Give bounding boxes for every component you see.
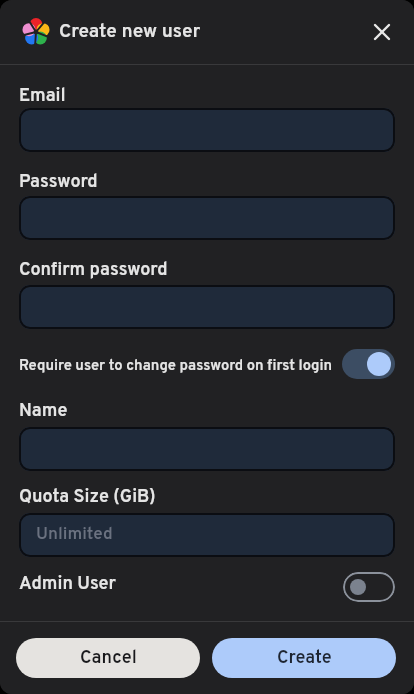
button[interactable] bbox=[19, 285, 395, 329]
button[interactable] bbox=[19, 108, 395, 152]
staticText: Require user to change password on first… bbox=[19, 357, 333, 376]
staticText: Quota Size (GiB) bbox=[19, 486, 156, 509]
button[interactable] bbox=[342, 349, 395, 379]
button[interactable] bbox=[343, 572, 395, 602]
staticText: Email bbox=[19, 85, 66, 108]
staticText: Create bbox=[277, 647, 332, 670]
button[interactable] bbox=[366, 16, 398, 48]
button[interactable]: Cancel bbox=[16, 638, 200, 678]
staticText: Unlimited bbox=[36, 524, 113, 546]
staticText: Confirm password bbox=[19, 259, 168, 282]
staticText: Create new user bbox=[59, 20, 201, 44]
staticText: Password bbox=[19, 171, 98, 194]
button[interactable] bbox=[19, 427, 395, 471]
staticText: Cancel bbox=[80, 647, 137, 670]
button[interactable]: Unlimited bbox=[19, 513, 395, 557]
button[interactable]: Create bbox=[212, 638, 396, 678]
staticText: Admin User bbox=[19, 573, 116, 596]
button[interactable] bbox=[19, 196, 395, 240]
staticText: Name bbox=[19, 400, 68, 423]
